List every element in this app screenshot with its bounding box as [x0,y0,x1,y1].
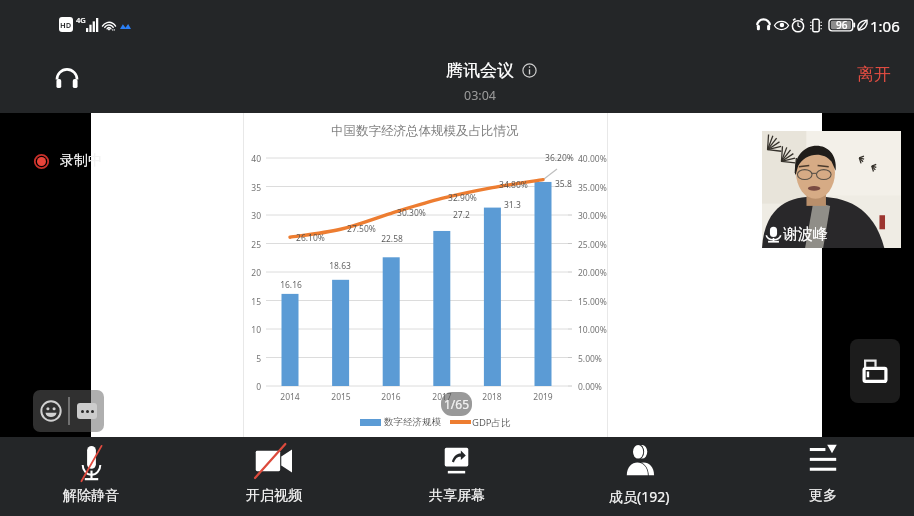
staticText: 03:04 [464,87,496,104]
button[interactable]: 成员(192) [548,437,731,516]
staticText: 34.80% [499,179,528,191]
staticText: 1/65 [444,396,470,412]
staticText: 2014 [280,391,300,403]
staticText: 1:06 [870,16,900,34]
staticText: 30.00% [578,210,607,222]
staticText: 数字经济规模 [384,416,441,428]
staticText: 35.8 [555,178,572,190]
staticText: 录制中 [60,152,102,170]
button[interactable]: Meeting info [521,62,538,79]
staticText: 15.00% [578,296,607,308]
staticText: 35 [251,182,261,194]
staticText: 26.10% [296,232,325,244]
staticText: 31.3 [504,199,521,211]
button[interactable]: 离开 [848,56,900,93]
button[interactable]: More reactions [70,390,104,432]
staticText: 5.00% [578,353,602,365]
staticText: 2018 [482,391,502,403]
staticText: 更多 [809,487,837,505]
staticText: 10 [251,324,261,336]
staticText: 谢波峰 [783,225,828,244]
staticText: 2016 [381,391,401,403]
staticText: 27.50% [347,223,376,235]
button[interactable]: Emoji reactions [33,390,68,432]
staticText: 35.00% [578,182,607,194]
staticText: 18.63 [329,260,351,272]
button[interactable]: Audio [48,60,86,98]
button[interactable]: 更多 [731,437,914,516]
staticText: 36.20% [545,152,574,164]
staticText: 20 [251,267,261,279]
staticText: 解除静音 [63,487,119,505]
button[interactable]: 解除静音 [0,437,182,516]
staticText: 5 [256,353,261,365]
button[interactable]: 1/65 [441,392,472,416]
staticText: 4G [76,15,86,25]
staticText: 腾讯会议 [446,60,514,81]
button[interactable]: 开启视频 [182,437,365,516]
staticText: 离开 [857,64,891,85]
staticText: 96 [836,18,848,32]
staticText: 40.00% [578,153,607,165]
staticText: 22.58 [381,233,403,245]
staticText: 开启视频 [246,487,302,505]
staticText: 15 [251,296,261,308]
staticText: 25.00% [578,239,607,251]
button[interactable]: Lock screen rotation [850,339,900,403]
staticText: 40 [251,153,261,165]
staticText: 2017 [432,391,452,403]
staticText: 成员(192) [609,487,670,506]
staticText: 2019 [533,391,553,403]
staticText: 30 [251,210,261,222]
staticText: 30.30% [397,207,426,219]
button[interactable]: Participant video: 谢波峰 [762,131,901,248]
staticText: 共享屏幕 [429,487,485,505]
staticText: 32.90% [448,192,477,204]
staticText: HD [60,20,72,30]
staticText: 中国数字经济总体规模及占比情况 [331,123,519,139]
staticText: 16.16 [280,279,302,291]
staticText: 27.2 [453,209,470,221]
staticText: 0 [256,381,261,393]
staticText: 25 [251,239,261,251]
button[interactable]: 中国数字经济总体规模及占比情况 [91,113,822,437]
staticText: GDP占比 [472,416,511,429]
staticText: 2015 [331,391,351,403]
staticText: 10.00% [578,324,607,336]
button[interactable]: 共享屏幕 [365,437,548,516]
staticText: 0.00% [578,381,602,393]
staticText: 20.00% [578,267,607,279]
